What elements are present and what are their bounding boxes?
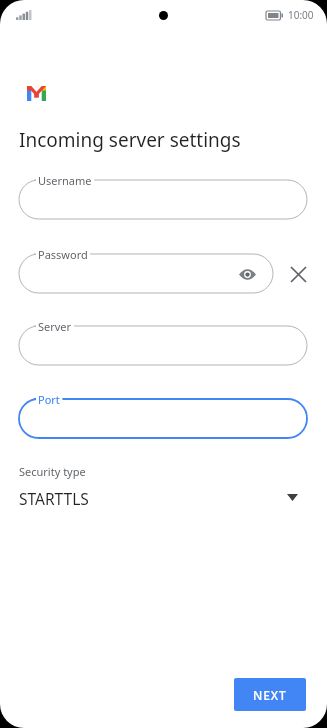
button[interactable]: Password <box>19 246 273 293</box>
staticText: Username <box>38 173 92 188</box>
staticText: Server <box>38 319 72 334</box>
staticText: Password <box>38 247 88 262</box>
staticText: Security type <box>19 464 86 479</box>
staticText: 10:00 <box>288 8 314 22</box>
button[interactable]: NEXT <box>234 678 306 711</box>
staticText: STARTTLS <box>19 488 89 509</box>
staticText: NEXT <box>253 687 287 703</box>
button[interactable]: Security type <box>19 464 307 514</box>
button[interactable]: Clear password <box>281 257 315 291</box>
button[interactable]: Server <box>19 318 307 365</box>
button[interactable]: Port <box>19 391 307 438</box>
staticText: Incoming server settings <box>19 127 241 153</box>
button[interactable]: Show password <box>234 261 260 287</box>
staticText: Port <box>38 392 60 407</box>
button[interactable]: Username <box>19 172 307 219</box>
